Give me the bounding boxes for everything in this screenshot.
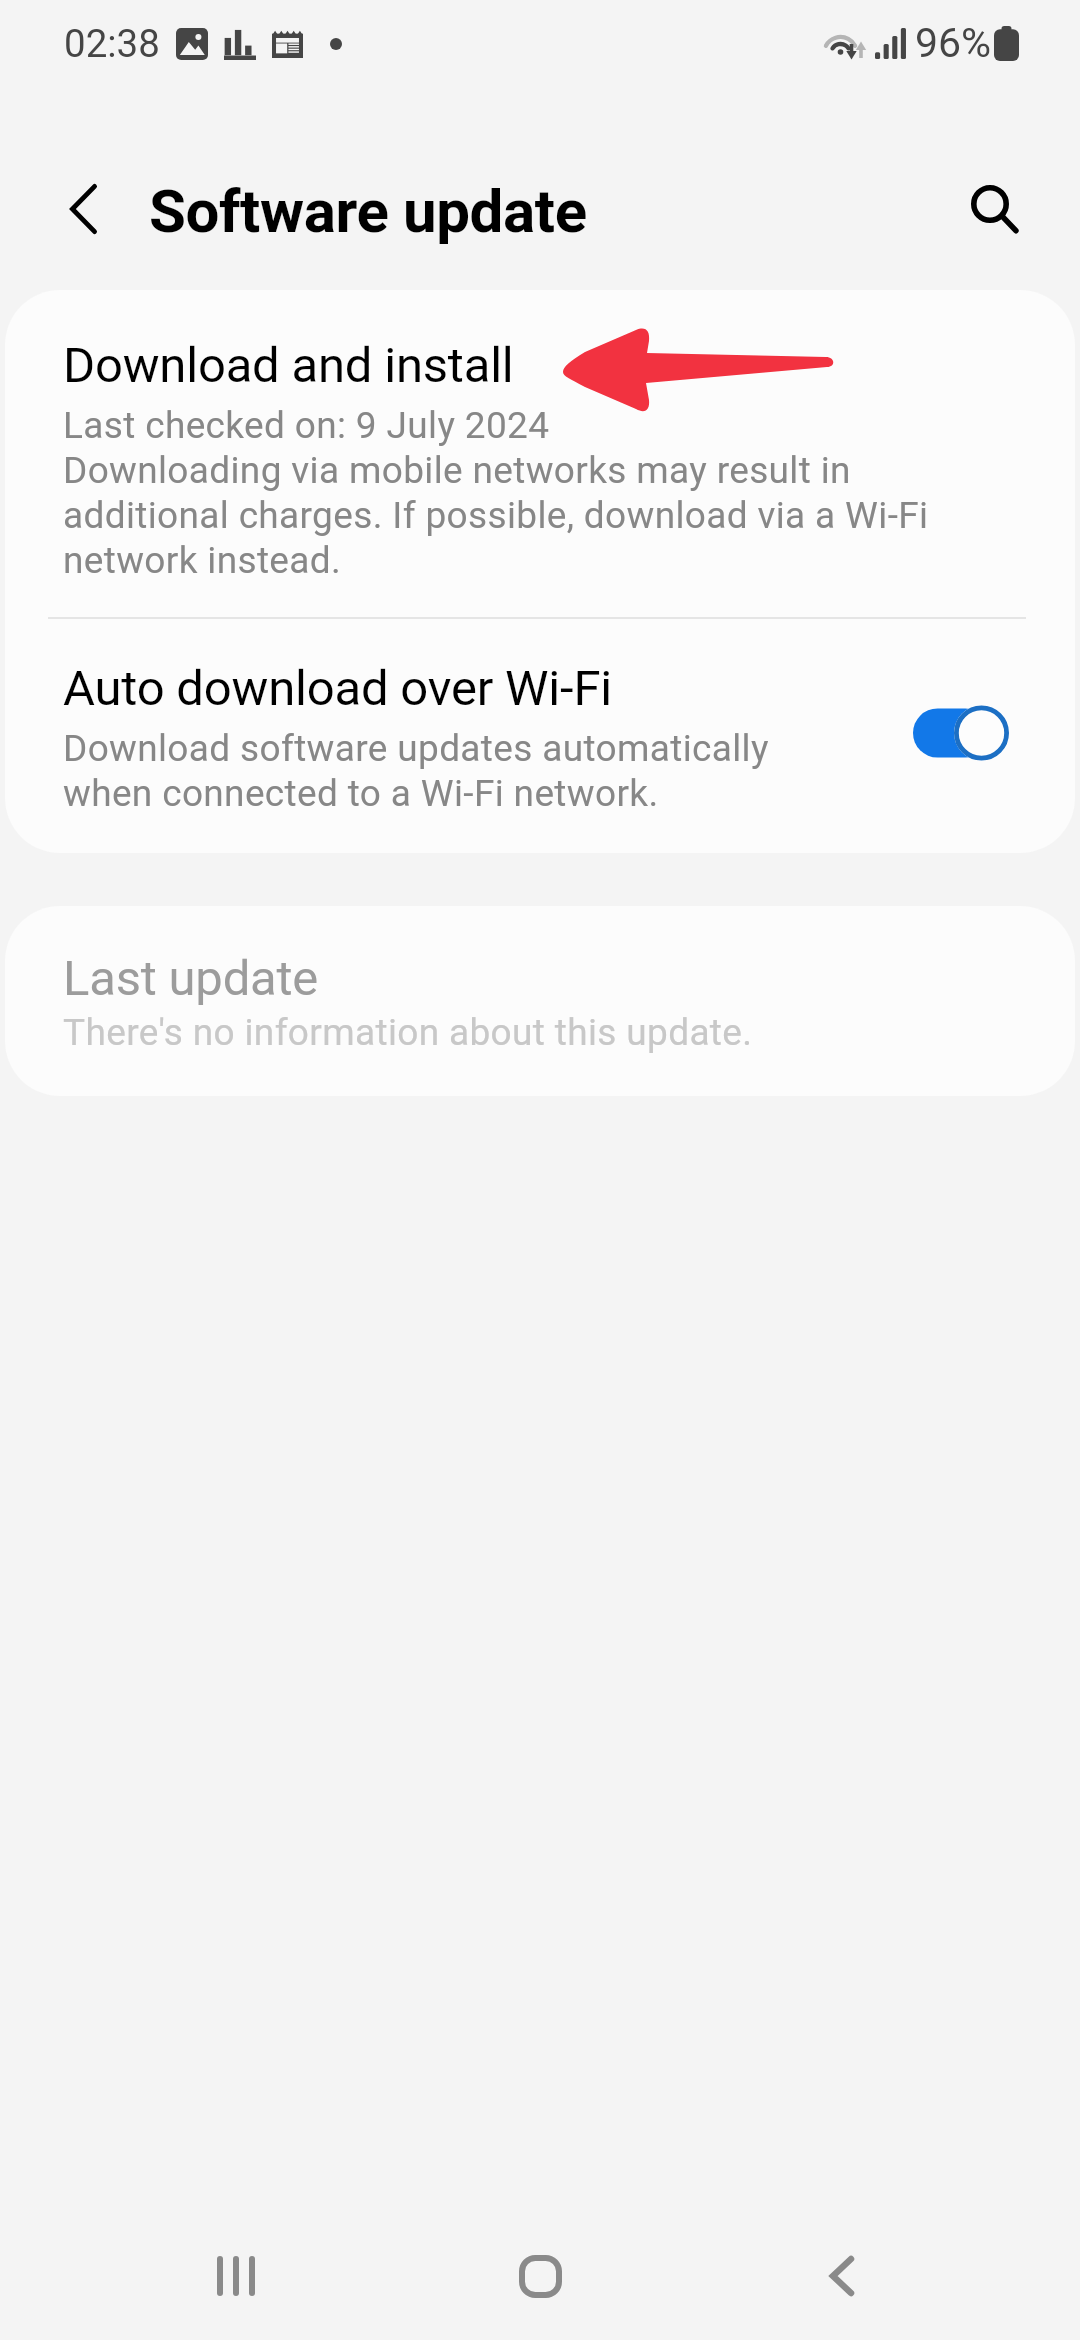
button[interactable]: Auto download over Wi-Fi, on [913, 704, 1009, 762]
staticText: Last update [63, 950, 319, 1007]
staticText: Last checked on: 9 July 2024 Downloading… [63, 402, 929, 582]
staticText: There's no information about this update… [63, 1009, 753, 1054]
button[interactable]: Navigate up [28, 154, 138, 264]
button[interactable]: Recent apps [181, 2221, 291, 2331]
button[interactable]: Download and install [5, 290, 1075, 617]
staticText: Download software updates automatically … [63, 725, 769, 815]
staticText: Software update [149, 176, 587, 246]
button[interactable]: Auto download over Wi-Fi [5, 619, 1075, 852]
staticText: 02:38 [64, 21, 160, 66]
button[interactable]: Search [935, 153, 1045, 263]
staticText: 96% [915, 19, 992, 67]
staticText: Download and install [63, 337, 514, 394]
staticText: Auto download over Wi-Fi [63, 660, 613, 717]
button[interactable]: Home [485, 2221, 595, 2331]
button[interactable]: Back [787, 2221, 897, 2331]
button[interactable]: Last update [5, 906, 1075, 1096]
